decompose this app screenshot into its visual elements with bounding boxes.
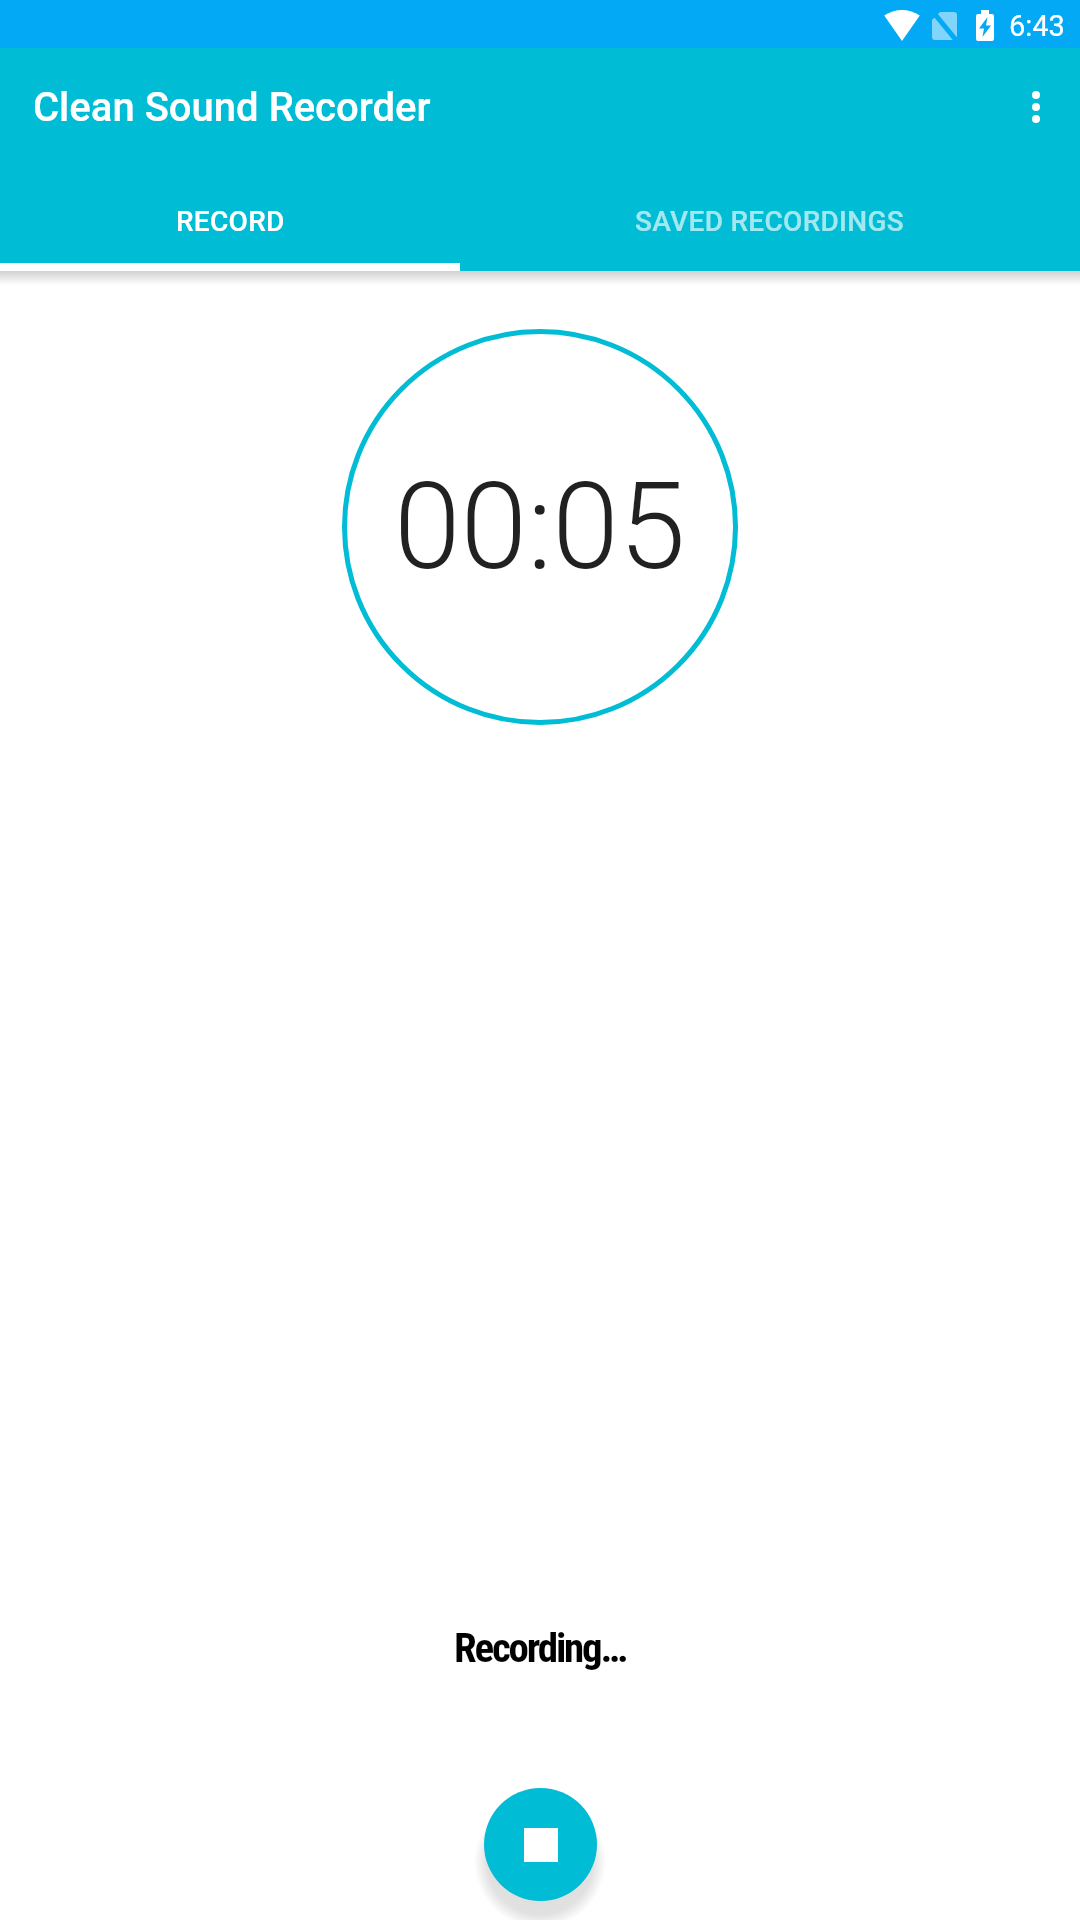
staticText: 6:43 bbox=[1009, 9, 1065, 43]
button[interactable]: SAVED RECORDINGS bbox=[460, 166, 1080, 271]
button[interactable] bbox=[484, 1788, 597, 1901]
staticText: SAVED RECORDINGS bbox=[635, 205, 905, 238]
button[interactable]: RECORD bbox=[0, 166, 460, 271]
staticText: RECORD bbox=[176, 205, 285, 238]
button[interactable] bbox=[1004, 75, 1068, 139]
staticText: Clean Sound Recorder bbox=[33, 84, 431, 131]
staticText: 00:05 bbox=[394, 457, 686, 598]
staticText: Recording… bbox=[454, 1624, 626, 1672]
